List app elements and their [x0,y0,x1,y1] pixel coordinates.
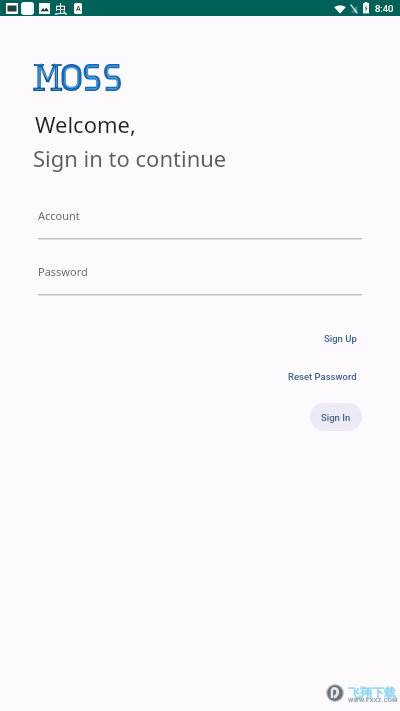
staticText: 8:40 [375,3,394,14]
staticText: A [76,5,81,13]
button[interactable]: Reset Password [288,371,357,382]
staticText: Welcome, [35,109,136,139]
staticText: Account [38,208,80,223]
staticText: Reset Password [288,371,357,382]
button[interactable]: Sign In [310,403,362,431]
staticText: 虫 [55,1,67,16]
staticText: Password [38,264,88,279]
button[interactable]: Sign Up [324,333,357,344]
button[interactable]: Password [38,264,362,296]
button[interactable]: Account [38,208,362,240]
staticText: Sign In [321,412,351,423]
staticText: WWW.FXXZ.COM [348,696,398,703]
staticText: Sign Up [324,333,357,344]
staticText: 飞翔下载 [348,685,396,700]
staticText: Sign in to continue [33,143,227,173]
